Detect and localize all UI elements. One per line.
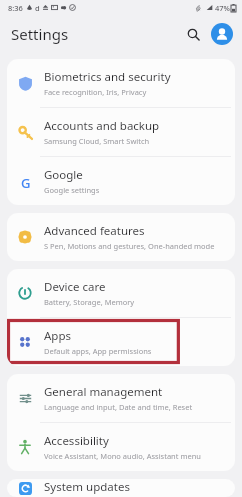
staticText: Apps xyxy=(44,328,72,344)
button[interactable]: Account xyxy=(211,23,233,45)
button[interactable]: Search xyxy=(181,22,205,46)
button[interactable]: Accounts and backup xyxy=(7,108,235,156)
staticText: d xyxy=(35,3,40,13)
staticText: Battery, Storage, Memory xyxy=(44,297,135,307)
staticText: Face recognition, Iris, Privacy xyxy=(44,87,147,97)
staticText: 8:36 xyxy=(8,3,23,13)
staticText: Voice Assistant, Mono audio, Assistant m… xyxy=(44,451,201,461)
staticText: Accessibility xyxy=(44,433,109,449)
button[interactable]: Device care xyxy=(7,269,235,317)
button[interactable]: Advanced features xyxy=(7,213,235,261)
button[interactable]: System updates xyxy=(7,479,235,497)
staticText: Advanced features xyxy=(44,223,145,239)
staticText: Biometrics and security xyxy=(44,69,171,85)
staticText: Google xyxy=(44,167,83,183)
staticText: G xyxy=(21,174,31,189)
staticText: Settings xyxy=(11,24,69,44)
staticText: General management xyxy=(44,384,163,400)
staticText: Google settings xyxy=(44,185,100,195)
button[interactable]: Apps xyxy=(7,318,235,366)
button[interactable]: G xyxy=(7,157,235,205)
staticText: Accounts and backup xyxy=(44,118,160,134)
staticText: Default apps, App permissions xyxy=(44,346,152,356)
button[interactable]: Biometrics and security xyxy=(7,59,235,107)
staticText: Device care xyxy=(44,279,106,295)
staticText: 47% xyxy=(215,3,230,13)
staticText: Language and input, Date and time, Reset xyxy=(44,402,193,412)
button[interactable]: Accessibility xyxy=(7,423,235,471)
staticText: S Pen, Motions and gestures, One-handed … xyxy=(44,241,215,251)
staticText: System updates xyxy=(44,479,130,495)
button[interactable]: General management xyxy=(7,374,235,422)
staticText: Samsung Cloud, Smart Switch xyxy=(44,136,150,146)
